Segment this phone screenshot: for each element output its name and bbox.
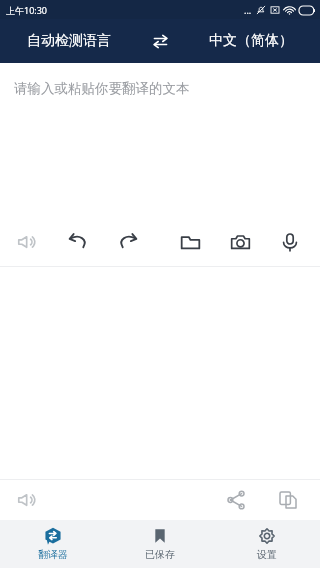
staticText: 中文（简体）: [209, 32, 293, 50]
staticText: 翻译器: [38, 548, 68, 561]
button[interactable]: 已保存: [106, 520, 213, 568]
button[interactable]: Undo: [60, 224, 96, 260]
button[interactable]: Speak translation: [10, 482, 46, 518]
staticText: ...: [244, 4, 252, 16]
button[interactable]: Microphone: [272, 224, 308, 260]
staticText: 上午10:30: [6, 4, 48, 16]
button[interactable]: 自动检测语言: [0, 19, 138, 63]
staticText: 已保存: [145, 548, 175, 561]
button[interactable]: Redo: [110, 224, 146, 260]
button[interactable]: Share: [218, 482, 254, 518]
staticText: 请输入或粘贴你要翻译的文本: [14, 80, 190, 97]
button[interactable]: 翻译器: [0, 520, 106, 568]
button[interactable]: 中文（简体）: [182, 19, 320, 63]
button[interactable]: Speak: [10, 224, 46, 260]
staticText: 自动检测语言: [27, 32, 111, 50]
button[interactable]: Copy: [270, 482, 306, 518]
button[interactable]: Open file: [172, 224, 208, 260]
button[interactable]: Camera: [222, 224, 258, 260]
button[interactable]: 设置: [213, 520, 320, 568]
staticText: 设置: [257, 548, 277, 561]
button[interactable]: Swap languages: [138, 19, 182, 63]
